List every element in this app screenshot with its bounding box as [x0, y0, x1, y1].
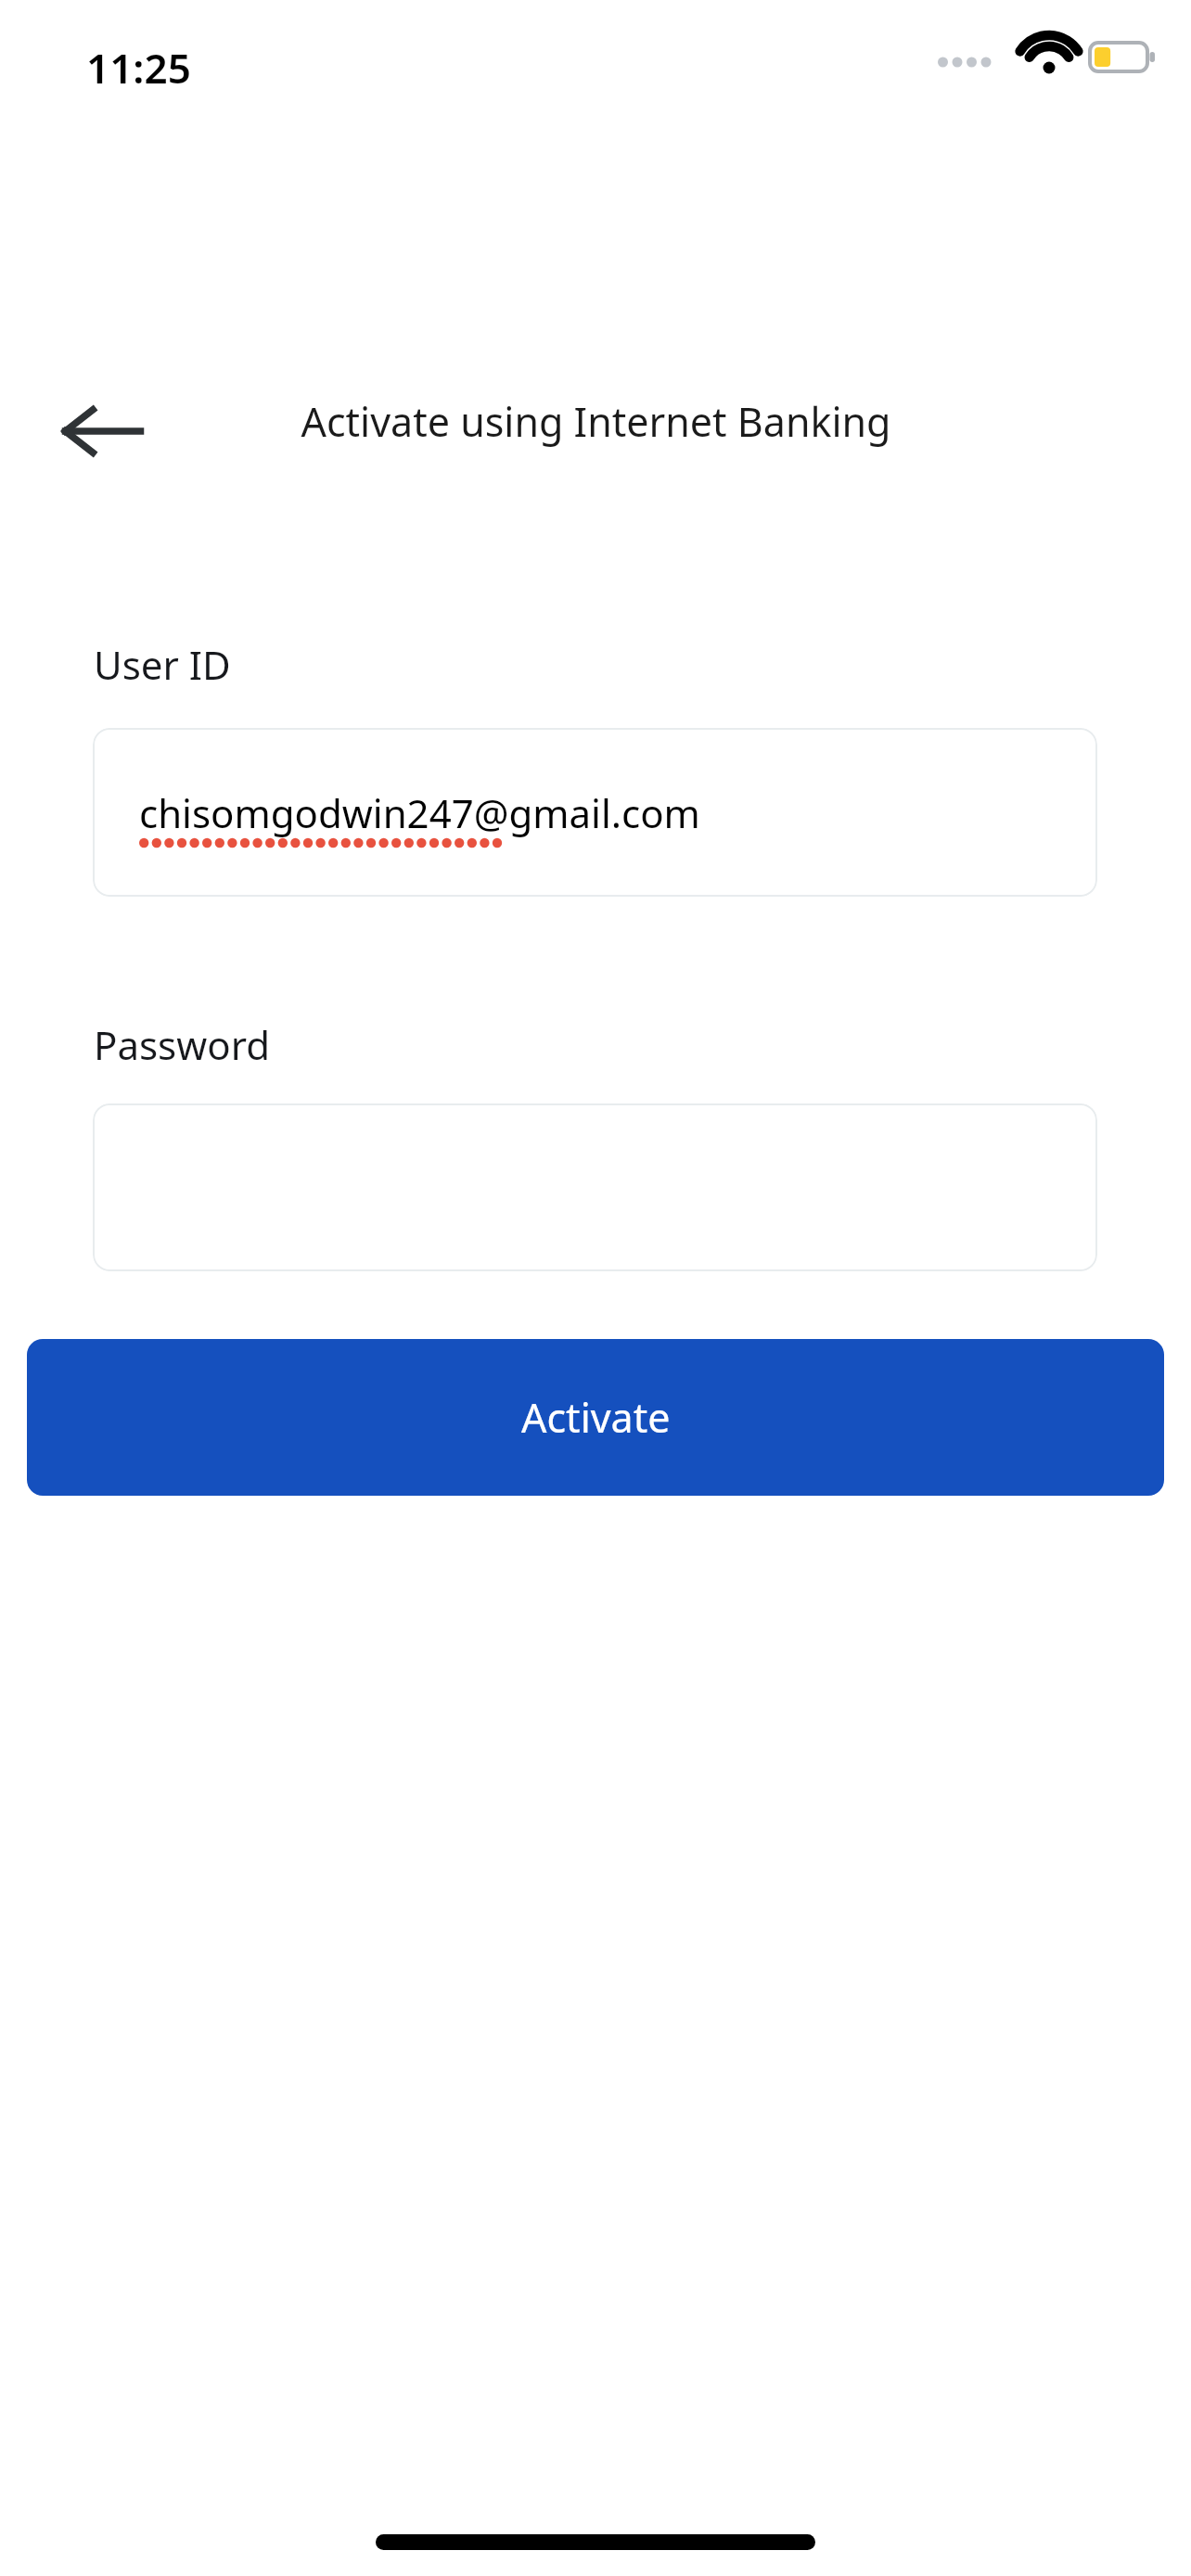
staticText: Activate using Internet Banking	[301, 394, 891, 449]
staticText: Password	[94, 1018, 270, 1071]
staticText: User ID	[94, 638, 231, 691]
staticText: Activate	[521, 1390, 671, 1445]
staticText: 11:25	[86, 40, 191, 96]
button[interactable]: Back	[43, 371, 163, 491]
button[interactable]: chisomgodwin247@gmail.com	[93, 728, 1097, 897]
button[interactable]	[93, 1103, 1097, 1271]
button[interactable]: Activate	[27, 1339, 1164, 1496]
staticText: chisomgodwin247@gmail.com	[139, 786, 700, 839]
